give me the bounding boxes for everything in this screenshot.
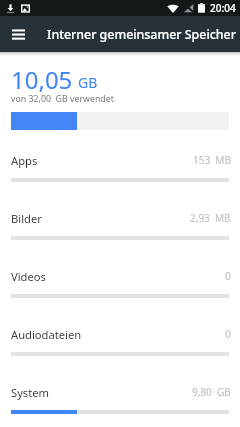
staticText: Apps (11, 153, 38, 168)
staticText: 2,93 MB (190, 211, 231, 225)
staticText: Bilder (11, 211, 42, 226)
staticText: 10,05 (11, 63, 73, 96)
staticText: 20:04 (210, 1, 236, 15)
button[interactable]: Audiodateien (0, 319, 240, 377)
button[interactable]: Videos (0, 261, 240, 319)
button[interactable]: Apps (0, 145, 240, 203)
staticText: Audiodateien (11, 327, 82, 342)
button[interactable]: Open navigation menu (0, 16, 36, 52)
staticText: Videos (11, 269, 46, 284)
staticText: 0 (225, 269, 231, 283)
staticText: System (11, 385, 50, 400)
staticText: 0 (225, 327, 231, 341)
button[interactable]: System (0, 377, 240, 427)
button[interactable]: Bilder (0, 203, 240, 261)
staticText: von 32,00 GB verwendet (11, 93, 114, 105)
staticText: GB (78, 73, 98, 92)
staticText: 9,80 GB (192, 385, 231, 399)
staticText: 153 MB (193, 153, 231, 167)
staticText: Interner gemeinsamer Speicher (47, 26, 236, 43)
